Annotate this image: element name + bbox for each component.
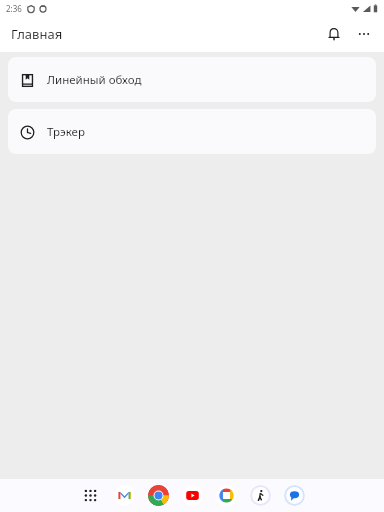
staticText: Линейный обход	[47, 72, 142, 88]
button[interactable]: Notifications	[319, 19, 349, 49]
button[interactable]: Линейный обход	[8, 57, 376, 102]
button[interactable]: Messages	[284, 485, 305, 506]
button[interactable]: Gmail	[114, 485, 135, 506]
button[interactable]: Трэкер	[8, 109, 376, 154]
button[interactable]: More options	[349, 19, 379, 49]
staticText: Главная	[11, 25, 63, 43]
button[interactable]: All apps	[80, 485, 101, 506]
button[interactable]: YouTube	[182, 485, 203, 506]
button[interactable]: Fitness	[250, 485, 271, 506]
button[interactable]: Google Photos	[216, 485, 237, 506]
button[interactable]: Chrome	[148, 485, 169, 506]
staticText: 2:36	[6, 3, 22, 14]
staticText: Трэкер	[47, 124, 85, 140]
